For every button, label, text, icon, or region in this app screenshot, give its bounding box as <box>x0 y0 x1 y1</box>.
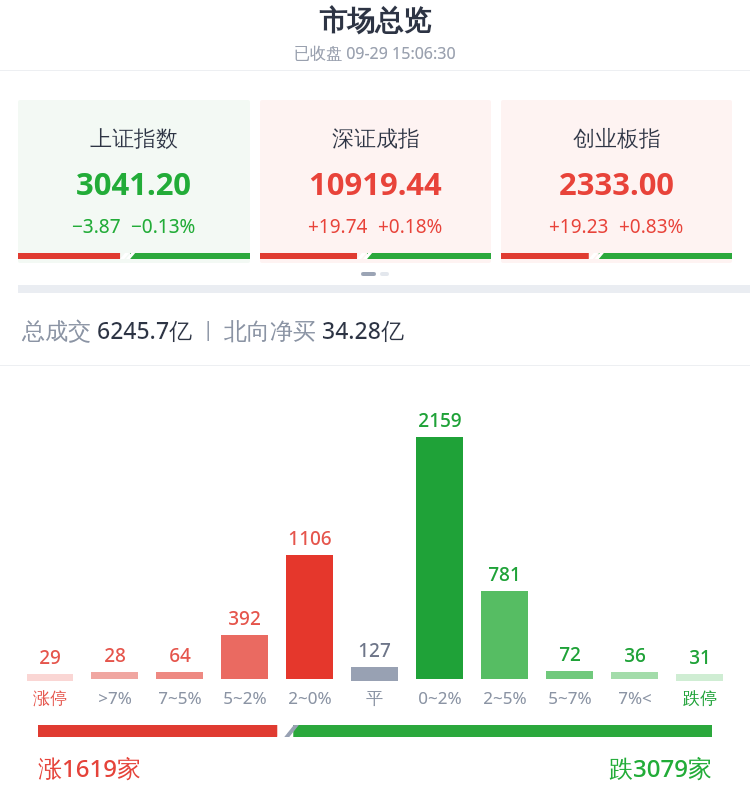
staticText: 2159 <box>418 407 462 433</box>
button[interactable]: 392 <box>212 605 277 709</box>
button[interactable]: 31 <box>667 644 732 709</box>
staticText: 3041.20 <box>76 162 192 204</box>
button[interactable]: 64 <box>147 642 212 709</box>
staticText: 72 <box>559 641 581 667</box>
staticText: 1106 <box>288 525 332 551</box>
button[interactable]: 上证指数 <box>18 100 250 263</box>
button[interactable]: 深证成指 <box>260 100 491 263</box>
staticText: 28 <box>104 642 126 668</box>
staticText: 总成交 <box>22 314 97 345</box>
staticText: 2~5% <box>483 686 527 709</box>
staticText: 2333.00 <box>559 162 675 204</box>
staticText: 平 <box>366 688 383 709</box>
staticText: 392 <box>228 605 261 631</box>
staticText: 6245.7亿 <box>97 314 193 345</box>
staticText: 127 <box>358 637 391 663</box>
staticText: +19.23 <box>549 213 609 239</box>
staticText: 创业板指 <box>573 125 661 153</box>
staticText: 31 <box>689 644 711 670</box>
staticText: 34.28亿 <box>322 314 404 345</box>
staticText: 7%< <box>618 686 652 709</box>
button[interactable]: 72 <box>537 641 602 709</box>
staticText: 7~5% <box>158 686 202 709</box>
button[interactable]: 创业板指 <box>501 100 732 263</box>
staticText: 64 <box>169 642 191 668</box>
staticText: 36 <box>624 642 646 668</box>
staticText: 涨1619家 <box>38 751 141 784</box>
staticText: −0.13% <box>131 213 196 239</box>
staticText: 上证指数 <box>90 125 178 153</box>
staticText: 跌3079家 <box>609 751 712 784</box>
button[interactable]: 781 <box>472 561 537 709</box>
button[interactable]: 2159 <box>407 407 472 709</box>
button[interactable]: 36 <box>602 642 667 709</box>
staticText: +0.18% <box>378 213 443 239</box>
staticText: 2~0% <box>288 686 332 709</box>
staticText: 5~2% <box>223 686 267 709</box>
button[interactable]: 总成交 <box>0 293 750 365</box>
staticText: 已收盘 09-29 15:06:30 <box>294 42 456 64</box>
staticText: 涨停 <box>33 688 67 709</box>
staticText: 5~7% <box>548 686 592 709</box>
staticText: 市场总览 <box>319 3 431 38</box>
staticText: 781 <box>488 561 521 587</box>
staticText: −3.87 <box>72 213 121 239</box>
button[interactable]: 29 <box>18 644 82 709</box>
staticText: 29 <box>39 644 61 670</box>
staticText: >7% <box>98 686 132 709</box>
staticText: 深证成指 <box>332 125 420 153</box>
staticText: 跌停 <box>683 688 717 709</box>
staticText: 10919.44 <box>309 162 442 204</box>
staticText: 0~2% <box>418 686 462 709</box>
button[interactable]: 127 <box>342 637 407 709</box>
staticText: +0.83% <box>619 213 684 239</box>
button[interactable]: 28 <box>82 642 147 709</box>
staticText: +19.74 <box>308 213 368 239</box>
staticText: | <box>193 316 224 342</box>
button[interactable]: 1106 <box>277 525 342 709</box>
staticText: 北向净买 <box>224 314 322 345</box>
